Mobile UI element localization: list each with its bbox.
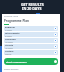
button[interactable]: Beginner — [4, 26, 58, 31]
staticText: Flexible — [5, 53, 12, 55]
button[interactable]: Custom — [4, 50, 58, 55]
button[interactable]: Start Programme — [4, 58, 58, 65]
button[interactable]: Advanced — [4, 38, 58, 43]
staticText: Beginner — [5, 26, 15, 29]
staticText: Start Programme — [6, 60, 54, 63]
staticText: IN 20 DAYS — [22, 6, 42, 11]
staticText: Athlete — [5, 44, 14, 47]
button[interactable]: Intermediate — [4, 32, 58, 37]
staticText: Cancel anytime — [4, 68, 19, 71]
staticText: Advanced — [5, 38, 16, 41]
staticText: Intermediate — [5, 32, 20, 35]
staticText: 8 weeks — [5, 35, 12, 37]
staticText: 4 weeks — [5, 29, 12, 31]
staticText: Programme Plan — [4, 19, 29, 23]
staticText: 16 weeks — [5, 47, 13, 49]
staticText: CHOOSE YOUR — [4, 15, 18, 18]
staticText: GET RESULTS — [21, 2, 44, 7]
button[interactable]: Athlete — [4, 44, 58, 49]
staticText: 12 weeks — [5, 41, 13, 43]
staticText: Custom — [5, 50, 14, 53]
